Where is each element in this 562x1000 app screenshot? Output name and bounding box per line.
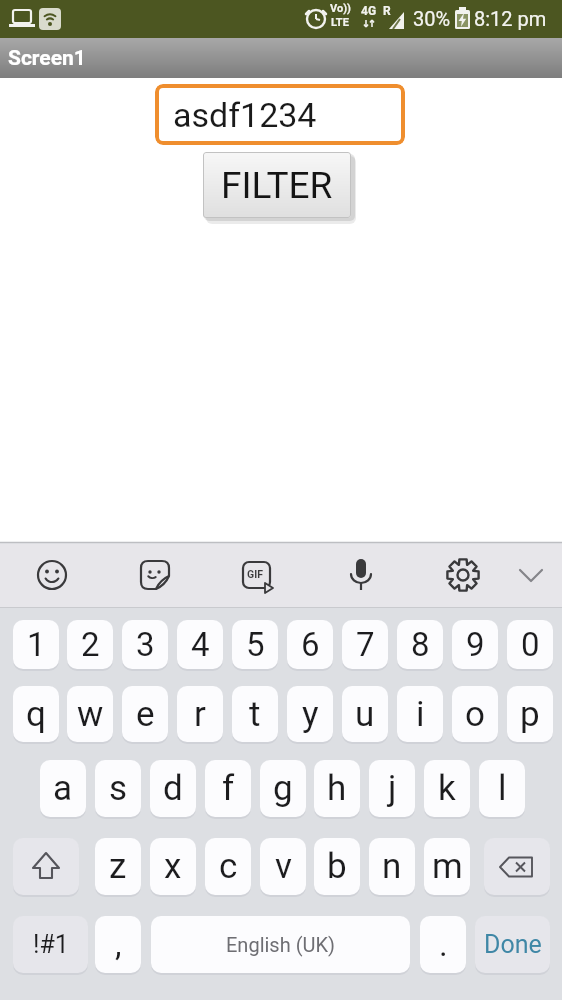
button[interactable]: !#1	[13, 916, 88, 973]
button[interactable]: j	[369, 760, 415, 817]
button[interactable]: q	[13, 686, 59, 742]
staticText: b	[327, 846, 347, 887]
staticText: d	[163, 768, 183, 809]
staticText: 4	[191, 625, 210, 664]
staticText: 4G	[361, 4, 377, 18]
staticText: o	[465, 694, 485, 735]
staticText: e	[136, 694, 155, 735]
button[interactable]: m	[424, 838, 470, 895]
staticText: Screen1	[8, 46, 86, 71]
staticText: g	[273, 768, 293, 809]
button[interactable]: y	[287, 686, 333, 742]
button[interactable]: f	[205, 760, 251, 817]
button[interactable]: k	[424, 760, 470, 817]
staticText: x	[164, 846, 182, 887]
staticText: q	[26, 694, 46, 735]
staticText: 6	[301, 625, 320, 664]
staticText: 3	[136, 625, 155, 664]
staticText: r	[194, 694, 206, 735]
staticText: Done	[484, 930, 542, 959]
button[interactable]: FILTER	[203, 152, 351, 218]
staticText: 5	[246, 625, 265, 664]
button[interactable]: 0	[507, 620, 553, 669]
button[interactable]	[13, 838, 79, 895]
button[interactable]: asdf1234	[155, 84, 405, 145]
staticText: 9	[466, 625, 485, 664]
button[interactable]: u	[342, 686, 388, 742]
staticText: j	[388, 768, 397, 809]
button[interactable]: b	[314, 838, 360, 895]
button[interactable]: ,	[95, 916, 141, 973]
button[interactable]: English (UK)	[151, 916, 410, 973]
button[interactable]: i	[397, 686, 443, 742]
staticText: f	[222, 768, 235, 809]
staticText: h	[327, 768, 347, 809]
button[interactable]: 4	[177, 620, 223, 669]
button[interactable]: d	[150, 760, 196, 817]
staticText: English (UK)	[226, 933, 335, 956]
staticText: t	[249, 694, 261, 735]
button[interactable]: 9	[452, 620, 498, 669]
button[interactable]: 8	[397, 620, 443, 669]
button[interactable]: c	[205, 838, 251, 895]
button[interactable]: n	[369, 838, 415, 895]
staticText: u	[355, 694, 375, 735]
staticText: s	[109, 768, 128, 809]
button[interactable]: r	[177, 686, 223, 742]
staticText: 30%	[413, 7, 451, 30]
button[interactable]: 2	[67, 620, 113, 669]
button[interactable]: a	[40, 760, 86, 817]
staticText: m	[432, 846, 463, 887]
button[interactable]: h	[314, 760, 360, 817]
button[interactable]: 6	[287, 620, 333, 669]
button[interactable]: 1	[13, 620, 59, 669]
staticText: 0	[521, 625, 540, 664]
staticText: w	[77, 694, 104, 735]
staticText: 8:12 pm	[474, 7, 547, 30]
button[interactable]: z	[95, 838, 141, 895]
staticText: 7	[356, 625, 375, 664]
button[interactable]: o	[452, 686, 498, 742]
button[interactable]: t	[232, 686, 278, 742]
staticText: .	[439, 925, 448, 964]
staticText: FILTER	[221, 164, 333, 207]
button[interactable]: s	[95, 760, 141, 817]
button[interactable]: l	[479, 760, 525, 817]
button[interactable]: e	[122, 686, 168, 742]
staticText: R	[383, 4, 391, 18]
staticText: y	[302, 694, 319, 735]
button[interactable]: v	[260, 838, 306, 895]
button[interactable]: w	[67, 686, 113, 742]
staticText: a	[53, 768, 73, 809]
staticText: GIF	[247, 568, 263, 580]
staticText: v	[275, 846, 292, 887]
staticText: Vo))	[330, 2, 351, 15]
staticText: p	[520, 694, 540, 735]
button[interactable]: x	[150, 838, 196, 895]
button[interactable]: g	[260, 760, 306, 817]
button[interactable]: Done	[475, 916, 550, 973]
staticText: ,	[115, 925, 122, 964]
staticText: LTE	[331, 16, 349, 29]
staticText: c	[219, 846, 238, 887]
staticText: i	[416, 694, 425, 735]
staticText: z	[109, 846, 127, 887]
button[interactable]: p	[507, 686, 553, 742]
staticText: !#1	[33, 930, 69, 959]
staticText: k	[438, 768, 456, 809]
staticText: 2	[81, 625, 100, 664]
staticText: 1	[27, 625, 46, 664]
staticText: asdf1234	[173, 95, 317, 135]
button[interactable]: .	[420, 916, 466, 973]
staticText: n	[382, 846, 402, 887]
button[interactable]	[484, 838, 550, 895]
button[interactable]: 7	[342, 620, 388, 669]
button[interactable]: 5	[232, 620, 278, 669]
staticText: l	[498, 768, 507, 809]
staticText: 8	[411, 625, 430, 664]
button[interactable]: 3	[122, 620, 168, 669]
